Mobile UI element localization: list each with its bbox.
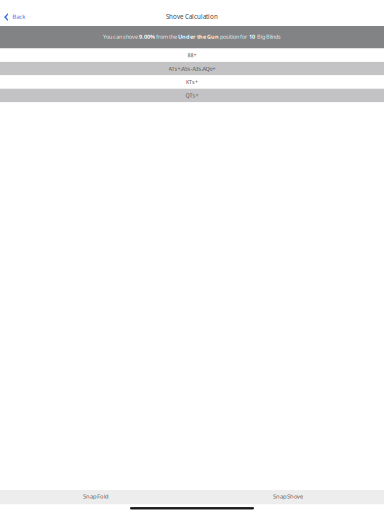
staticText: SnapShove (273, 492, 303, 500)
staticText: 10 (248, 33, 256, 40)
button[interactable]: Back (0, 7, 33, 26)
staticText: QTs+ (185, 92, 198, 99)
button[interactable]: SnapShove (192, 490, 384, 504)
staticText: KTs+ (186, 78, 198, 86)
button[interactable]: SnapFold (0, 490, 192, 504)
staticText: SnapFold (83, 492, 109, 500)
staticText: Under the Gun (178, 33, 219, 40)
staticText: 88+ (187, 52, 196, 59)
staticText: You can shove (103, 33, 139, 40)
staticText: Shove Calculation (166, 12, 218, 21)
staticText: Back (12, 12, 25, 21)
staticText: position for (219, 33, 248, 40)
staticText: 9.00% (139, 33, 155, 40)
staticText: from the (155, 33, 178, 40)
staticText: Big Blinds (256, 33, 281, 40)
staticText: ATs+,A5s-A3s,AQo+ (168, 65, 215, 72)
